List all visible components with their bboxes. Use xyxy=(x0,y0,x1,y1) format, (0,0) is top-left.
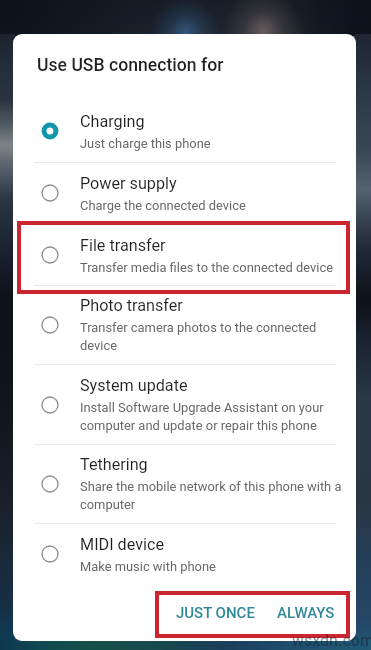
staticText: Photo transfer xyxy=(80,296,183,315)
staticText: Transfer camera photos to the connected … xyxy=(80,320,342,353)
button[interactable]: MIDI device xyxy=(13,523,356,585)
staticText: System update xyxy=(80,376,188,395)
staticText: Tethering xyxy=(80,455,148,474)
button[interactable]: System update xyxy=(13,365,356,444)
staticText: wsxdn.com xyxy=(292,631,371,650)
button[interactable]: Power supply xyxy=(13,162,356,224)
staticText: Just charge this phone xyxy=(80,136,211,151)
staticText: Make music with phone xyxy=(80,559,216,574)
staticText: Transfer media files to the connected de… xyxy=(80,260,333,275)
staticText: File transfer xyxy=(80,236,166,255)
staticText: Charge the connected device xyxy=(80,198,246,213)
button[interactable]: JUST ONCE xyxy=(168,597,263,629)
button[interactable]: File transfer xyxy=(13,224,356,286)
staticText: ALWAYS xyxy=(277,604,335,622)
button[interactable]: Tethering xyxy=(13,444,356,523)
staticText: Install Software Upgrade Assistant on yo… xyxy=(80,400,342,433)
staticText: Power supply xyxy=(80,174,177,193)
button[interactable]: Photo transfer xyxy=(13,285,356,364)
staticText: MIDI device xyxy=(80,535,165,554)
button[interactable]: Charging xyxy=(13,100,356,162)
button[interactable]: ALWAYS xyxy=(269,597,343,629)
staticText: Charging xyxy=(80,112,145,131)
staticText: Share the mobile network of this phone w… xyxy=(80,479,342,512)
staticText: Use USB connection for xyxy=(37,55,224,76)
staticText: JUST ONCE xyxy=(176,604,255,622)
